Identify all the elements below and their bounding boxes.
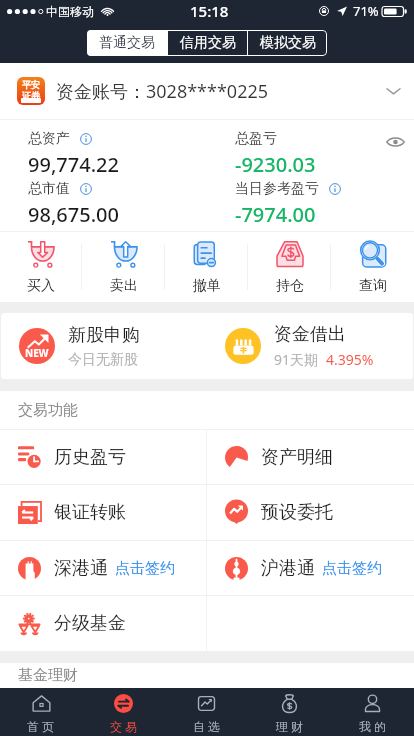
staticText: 银证转账	[54, 501, 126, 524]
button[interactable]: NEW	[1, 313, 207, 379]
button[interactable]: 买入	[0, 232, 82, 302]
button[interactable]: 自 选	[165, 688, 248, 736]
staticText: 资金账号：3028****0225	[56, 79, 269, 104]
staticText: NEW	[25, 346, 49, 360]
button[interactable]: 沪港通	[207, 541, 414, 595]
button[interactable]: 历史盈亏	[0, 430, 206, 484]
staticText: 71%	[353, 2, 379, 20]
staticText: 历史盈亏	[54, 446, 126, 469]
staticText: 证券	[22, 90, 40, 101]
button[interactable]: 预设委托	[207, 485, 414, 540]
staticText: 交 易	[110, 718, 138, 734]
button[interactable]: 平安	[0, 63, 414, 119]
staticText: 新股申购	[68, 324, 140, 347]
staticText: 持仓	[276, 277, 304, 295]
staticText: 普通交易	[99, 34, 155, 52]
staticText: 理 财	[276, 718, 304, 734]
staticText: 信用交易	[180, 34, 236, 52]
staticText: 自 选	[193, 718, 221, 734]
staticText: 98,675.00	[28, 201, 119, 228]
other: Switch account	[386, 86, 401, 97]
button[interactable]: 普通交易	[87, 30, 167, 56]
staticText: -9230.03	[235, 151, 316, 178]
button[interactable]: Hide balance	[384, 131, 406, 153]
button[interactable]: 卖出	[82, 232, 165, 302]
staticText: 91天期	[274, 350, 319, 369]
staticText: 总市值	[28, 180, 70, 198]
button[interactable]: 模拟交易	[248, 30, 327, 56]
button[interactable]: 持仓	[248, 232, 331, 302]
button[interactable]: Info	[329, 183, 341, 195]
staticText: 卖出	[110, 277, 138, 295]
staticText: 今日无新股	[68, 351, 138, 369]
staticText: 沪港通	[261, 557, 315, 580]
button[interactable]: 首 页	[0, 688, 82, 736]
button[interactable]: 资产明细	[207, 430, 414, 484]
button[interactable]: 撤单	[165, 232, 248, 302]
staticText: 点击签约	[115, 559, 175, 578]
staticText: 深港通	[54, 557, 108, 580]
staticText: 平安	[22, 79, 40, 90]
staticText: 资金借出	[274, 323, 346, 346]
button[interactable]: 查询	[331, 232, 414, 302]
staticText: 撤单	[193, 277, 221, 295]
staticText: 查询	[359, 277, 387, 295]
button[interactable]: 深港通	[0, 541, 206, 595]
button[interactable]: 信用交易	[168, 30, 247, 56]
button[interactable]: Info	[80, 183, 92, 195]
button[interactable]: 交 易	[82, 688, 165, 736]
button[interactable]: 理 财	[248, 688, 331, 736]
button[interactable]: 我 的	[331, 688, 414, 736]
staticText: 买入	[27, 277, 55, 295]
staticText: 分级基金	[54, 612, 126, 635]
staticText: 总资产	[28, 130, 70, 148]
staticText: -7974.00	[235, 201, 316, 228]
staticText: 当日参考盈亏	[235, 180, 319, 198]
button[interactable]: 分级基金	[0, 596, 206, 651]
button[interactable]: 银证转账	[0, 485, 206, 540]
staticText: 中国移动	[46, 4, 94, 19]
button[interactable]: Info	[80, 133, 92, 145]
staticText: 资产明细	[261, 446, 333, 469]
staticText: 我 的	[359, 718, 387, 734]
staticText: 99,774.22	[28, 151, 119, 178]
staticText: 首 页	[27, 718, 55, 734]
staticText: 交易功能	[18, 401, 78, 420]
staticText: 4.395%	[326, 350, 374, 369]
staticText: 15:18	[190, 1, 229, 21]
staticText: 基金理财	[18, 666, 78, 685]
staticText: 总盈亏	[235, 130, 277, 148]
staticText: 模拟交易	[260, 34, 316, 52]
staticText: 预设委托	[261, 501, 333, 524]
button[interactable]: 资金借出	[207, 313, 413, 379]
staticText: 点击签约	[322, 559, 382, 578]
